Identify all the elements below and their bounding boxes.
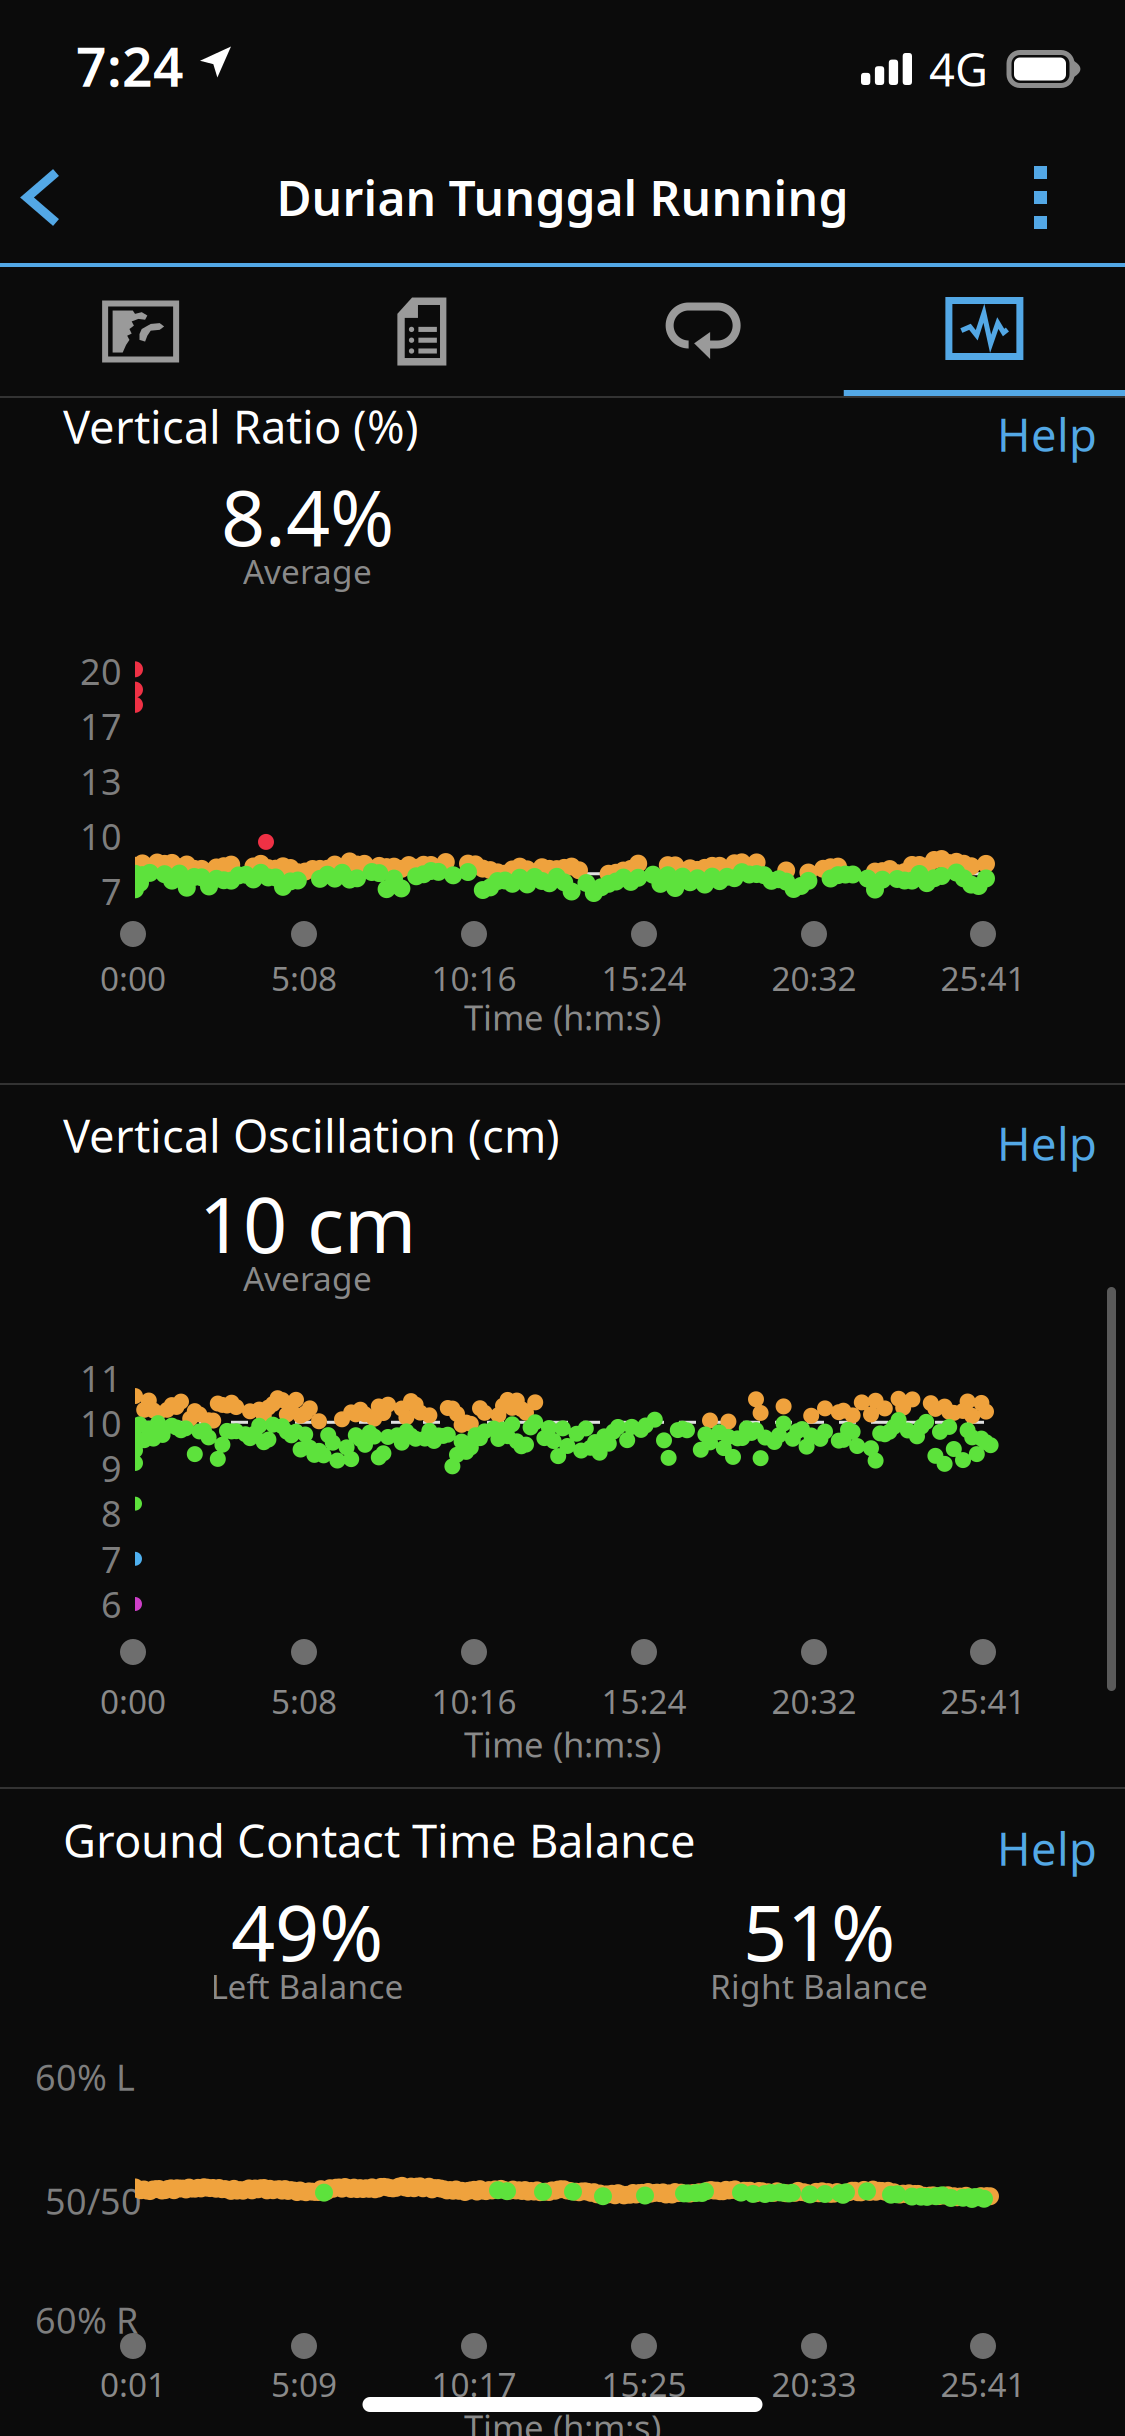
staticText: 20:33 bbox=[771, 2362, 856, 2406]
staticText: 17 bbox=[80, 702, 122, 750]
staticText: 7 bbox=[101, 867, 122, 915]
staticText: 20 bbox=[80, 647, 122, 695]
staticText: 4G bbox=[929, 39, 988, 99]
button[interactable]: Help bbox=[981, 1091, 1113, 1179]
staticText: Average bbox=[243, 549, 372, 593]
staticText: Time (h:m:s) bbox=[464, 994, 661, 1040]
button[interactable]: Running dynamics bbox=[844, 267, 1125, 396]
staticText: 10:17 bbox=[431, 2362, 516, 2406]
button[interactable]: Details bbox=[281, 270, 562, 393]
staticText: 15:24 bbox=[601, 956, 686, 1000]
staticText: 10:16 bbox=[431, 1679, 516, 1723]
staticText: Right Balance bbox=[710, 1964, 928, 2008]
staticText: 0:00 bbox=[100, 1679, 166, 1723]
staticText: 0:00 bbox=[100, 956, 166, 1000]
staticText: 9 bbox=[101, 1444, 122, 1492]
staticText: Vertical Ratio (%) bbox=[63, 396, 419, 456]
staticText: Help bbox=[997, 1818, 1097, 1878]
button[interactable]: More options bbox=[996, 138, 1125, 257]
button[interactable]: Help bbox=[981, 382, 1113, 470]
staticText: 15:24 bbox=[601, 1679, 686, 1723]
staticText: 0:01 bbox=[100, 2362, 166, 2406]
staticText: 10 bbox=[80, 812, 122, 860]
staticText: 15:25 bbox=[601, 2362, 686, 2406]
button[interactable]: Help bbox=[981, 1796, 1113, 1884]
staticText: 7 bbox=[101, 1535, 122, 1583]
staticText: 10:16 bbox=[431, 956, 516, 1000]
button[interactable]: Back bbox=[0, 136, 92, 258]
staticText: 8.4% bbox=[221, 465, 394, 567]
staticText: 25:41 bbox=[940, 1679, 1025, 1723]
staticText: Help bbox=[997, 1113, 1097, 1173]
button[interactable]: Map bbox=[0, 270, 281, 393]
staticText: 8 bbox=[101, 1489, 122, 1537]
staticText: 5:09 bbox=[271, 2362, 337, 2406]
staticText: 6 bbox=[101, 1580, 122, 1628]
staticText: 25:41 bbox=[940, 956, 1025, 1000]
staticText: 51% bbox=[743, 1880, 895, 1982]
staticText: 7:24 bbox=[76, 31, 184, 101]
staticText: Durian Tunggal Running bbox=[276, 166, 848, 229]
staticText: 25:41 bbox=[940, 2362, 1025, 2406]
staticText: Time (h:m:s) bbox=[464, 2404, 661, 2436]
staticText: 49% bbox=[231, 1880, 383, 1982]
staticText: Left Balance bbox=[210, 1964, 403, 2008]
staticText: 60% R bbox=[35, 2296, 138, 2344]
staticText: 13 bbox=[80, 757, 122, 805]
button[interactable]: Laps bbox=[562, 270, 844, 393]
staticText: Vertical Oscillation (cm) bbox=[63, 1105, 560, 1165]
staticText: 5:08 bbox=[271, 956, 337, 1000]
staticText: 60% L bbox=[35, 2053, 135, 2101]
staticText: Ground Contact Time Balance bbox=[63, 1810, 696, 1870]
staticText: Average bbox=[243, 1256, 372, 1300]
staticText: Help bbox=[997, 404, 1097, 464]
staticText: 20:32 bbox=[771, 956, 856, 1000]
staticText: 10 cm bbox=[199, 1172, 416, 1274]
staticText: 20:32 bbox=[771, 1679, 856, 1723]
staticText: 11 bbox=[80, 1354, 122, 1402]
staticText: Time (h:m:s) bbox=[464, 1721, 661, 1767]
staticText: 50/50 bbox=[45, 2177, 142, 2225]
staticText: 5:08 bbox=[271, 1679, 337, 1723]
staticText: 10 bbox=[80, 1399, 122, 1447]
